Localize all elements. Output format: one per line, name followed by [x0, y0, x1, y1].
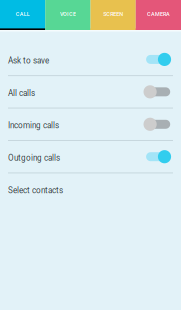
button[interactable]: SCREEN	[90, 0, 136, 30]
staticText: SCREEN	[103, 11, 123, 17]
button[interactable]: Outgoing calls	[0, 141, 181, 172]
staticText: CAMERA	[147, 11, 170, 17]
button[interactable]: Incoming calls	[0, 109, 181, 140]
button[interactable]: CAMERA	[136, 0, 181, 30]
staticText: All calls	[8, 88, 35, 98]
staticText: VOICE	[60, 11, 76, 17]
button[interactable]: All calls	[0, 76, 181, 107]
staticText: Select contacts	[8, 186, 63, 195]
button[interactable]: CALL	[0, 0, 45, 30]
staticText: Outgoing calls	[8, 153, 60, 163]
staticText: Incoming calls	[8, 121, 59, 130]
staticText: CALL	[16, 11, 30, 17]
button[interactable]: VOICE	[45, 0, 90, 30]
staticText: Ask to save	[8, 56, 49, 65]
button[interactable]: Select contacts	[0, 173, 181, 205]
button[interactable]: Ask to save	[0, 44, 181, 75]
